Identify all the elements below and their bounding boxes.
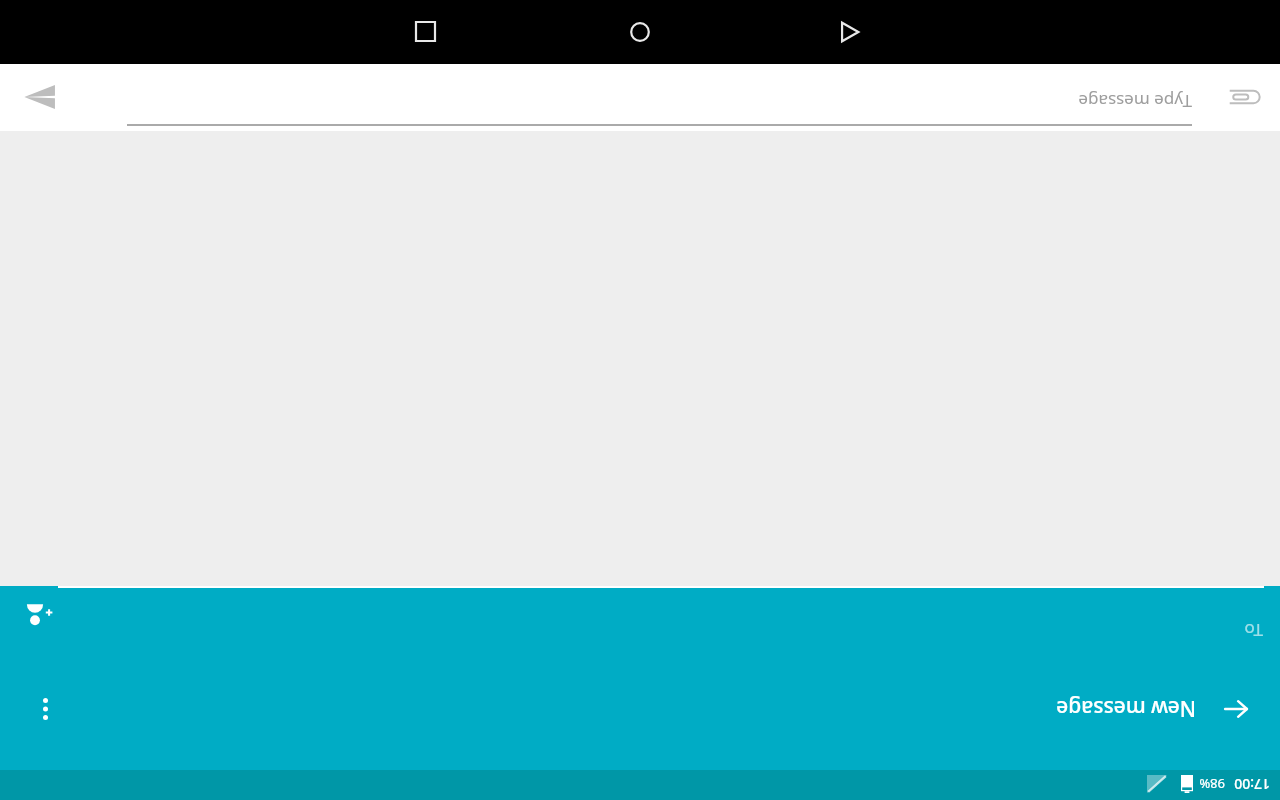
button[interactable]: Attach file [1222,75,1266,119]
button[interactable]: Back [820,2,880,62]
staticText: 98% [1199,775,1225,793]
staticText: Type message [1078,90,1192,113]
button[interactable]: Add recipient [18,594,58,634]
button[interactable]: Home [610,2,670,62]
button[interactable]: Recent apps [396,2,456,62]
staticText: New message [1056,694,1196,723]
staticText: 17:00 [1234,775,1270,794]
button[interactable]: More options [26,689,66,729]
button[interactable]: Send [12,69,68,125]
staticText: To [1244,619,1263,642]
button[interactable]: Back [1218,691,1254,727]
button[interactable]: Type message [127,68,1192,126]
